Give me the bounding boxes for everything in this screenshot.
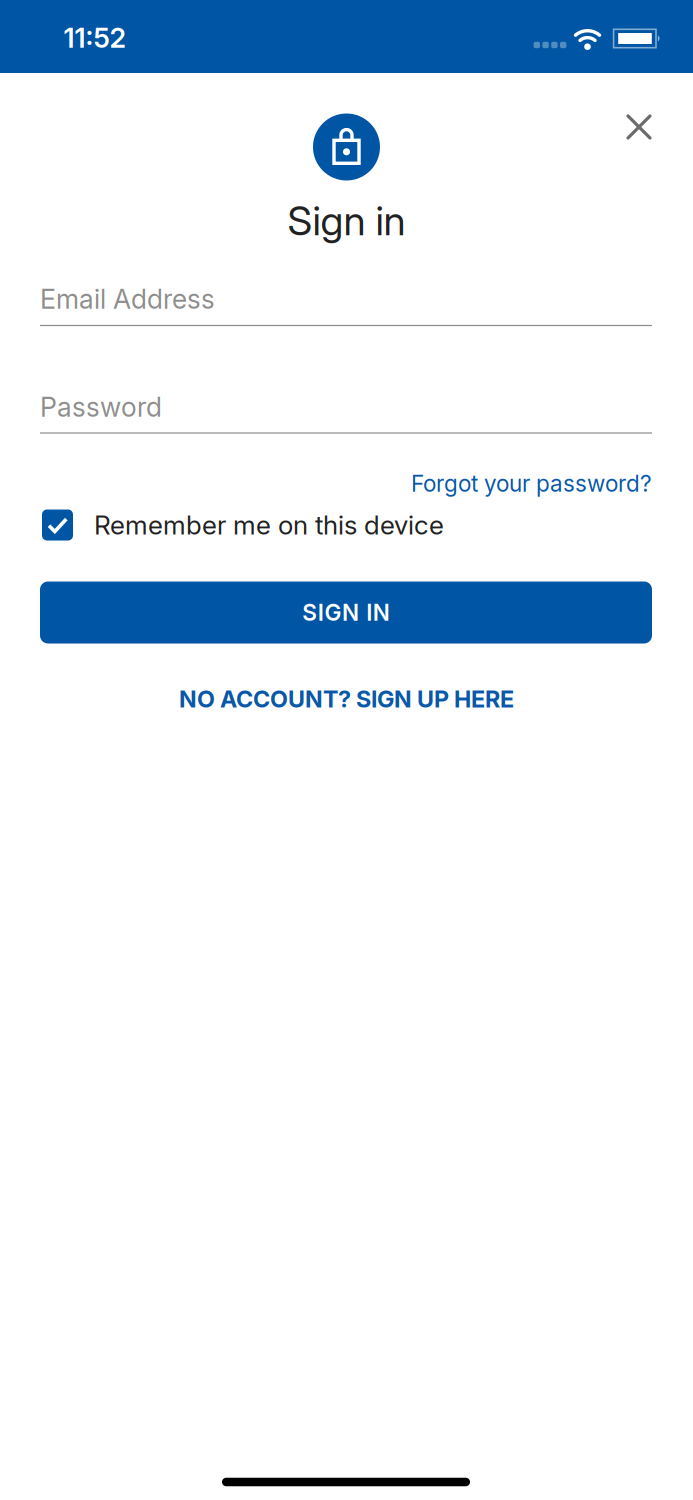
button[interactable]: NO ACCOUNT? SIGN UP HERE (179, 685, 514, 713)
staticText: Password (40, 391, 162, 423)
button[interactable]: SIGN IN (40, 581, 652, 643)
staticText: NO ACCOUNT? SIGN UP HERE (179, 685, 514, 713)
staticText: Remember me on this device (94, 509, 444, 541)
button[interactable]: Close (617, 105, 661, 149)
button[interactable]: Remember me on this device (42, 509, 444, 541)
button[interactable]: Forgot your password? (411, 470, 652, 497)
staticText: SIGN IN (302, 599, 390, 626)
staticText: Email Address (40, 283, 215, 315)
staticText: Forgot your password? (411, 470, 652, 497)
staticText: 11:52 (63, 22, 126, 54)
staticText: Sign in (287, 196, 405, 245)
